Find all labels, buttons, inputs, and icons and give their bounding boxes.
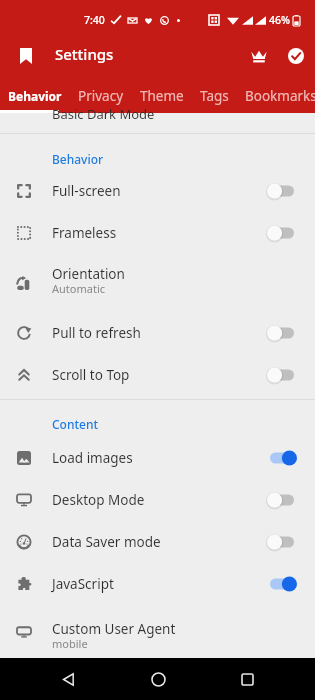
button[interactable]: Back [47,658,89,700]
button[interactable]: Home [137,658,179,700]
button[interactable]: Tags [192,79,237,113]
button[interactable]: Premium [227,34,271,78]
staticText: Custom User Agent [52,620,176,638]
button[interactable]: Data Saver mode [0,521,315,563]
button[interactable]: Frameless [0,212,315,254]
staticText: Tags [200,87,229,105]
staticText: Basic Dark Mode [52,105,155,123]
staticText: Theme [140,87,184,105]
button[interactable]: JavaScript [0,563,315,605]
staticText: Settings [55,44,114,64]
staticText: Desktop Mode [52,491,145,509]
staticText: 46% [269,13,290,27]
button[interactable]: Recents [226,658,268,700]
staticText: mobile [52,636,88,651]
staticText: Behavior [8,88,62,104]
staticText: Orientation [52,265,125,283]
button[interactable]: Pull to refresh [0,312,315,354]
button[interactable]: Scroll to Top [0,354,315,396]
staticText: Full-screen [52,182,121,200]
button[interactable]: Privacy [70,79,132,113]
button[interactable]: Behavior [0,79,70,113]
staticText: Data Saver mode [52,533,161,551]
button[interactable]: Desktop Mode [0,479,315,521]
staticText: Content [52,416,99,432]
button[interactable]: Load images [0,437,315,479]
button[interactable]: Bookmarks [237,79,315,113]
staticText: Frameless [52,224,117,242]
button[interactable]: Custom User Agent [0,605,315,658]
staticText: Bookmarks [245,87,315,105]
button[interactable]: Theme [132,79,192,113]
staticText: Load images [52,449,133,467]
button[interactable]: Bookmarks [0,33,46,79]
staticText: Scroll to Top [52,366,130,384]
button[interactable]: Apply [271,34,315,78]
staticText: Privacy [78,87,124,105]
button[interactable]: Full-screen [0,170,315,212]
staticText: JavaScript [52,575,114,593]
staticText: Behavior [52,151,104,167]
button[interactable]: Orientation [0,254,315,312]
staticText: 7:40 [84,13,105,27]
staticText: Pull to refresh [52,324,141,342]
staticText: Automatic [52,281,105,296]
